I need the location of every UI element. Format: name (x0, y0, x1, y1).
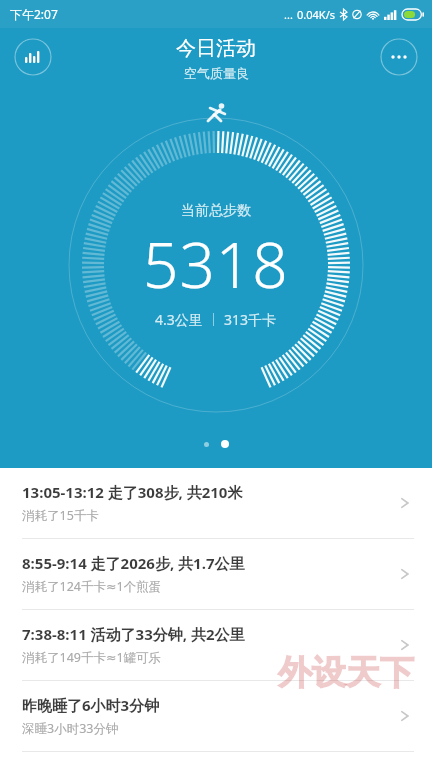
staticText: 今日活动 (176, 36, 256, 61)
staticText: ... (284, 7, 293, 22)
button[interactable]: 13:05-13:12 走了308步, 共210米 (0, 468, 432, 538)
button[interactable]: Statistics (14, 38, 52, 76)
button[interactable]: More options (380, 38, 418, 76)
staticText: 昨晚睡了6小时3分钟 (22, 695, 160, 715)
staticText: 当前总步数 (181, 202, 251, 220)
staticText: 5318 (143, 222, 289, 306)
staticText: 消耗了149千卡≈1罐可乐 (22, 649, 162, 666)
staticText: 深睡3小时33分钟 (22, 720, 119, 737)
staticText: 13:05-13:12 走了308步, 共210米 (22, 482, 243, 502)
staticText: 313千卡 (224, 310, 277, 329)
staticText: 8:55-9:14 走了2026步, 共1.7公里 (22, 553, 245, 573)
staticText: 消耗了124千卡≈1个煎蛋 (22, 578, 162, 595)
button[interactable]: 8:55-9:14 走了2026步, 共1.7公里 (0, 539, 432, 609)
staticText: 空气质量良 (184, 65, 249, 81)
staticText: 外设天下 (278, 651, 414, 694)
staticText: 0.04K/s (297, 7, 335, 22)
staticText: 消耗了15千卡 (22, 507, 99, 524)
staticText: 下午2:07 (10, 6, 58, 22)
staticText: 4.3公里 (155, 310, 203, 329)
staticText: 7:38-8:11 活动了33分钟, 共2公里 (22, 624, 245, 644)
button[interactable]: 昨晚睡了6小时3分钟 (0, 681, 432, 751)
button[interactable]: 7:38-8:11 活动了33分钟, 共2公里 (0, 610, 432, 680)
